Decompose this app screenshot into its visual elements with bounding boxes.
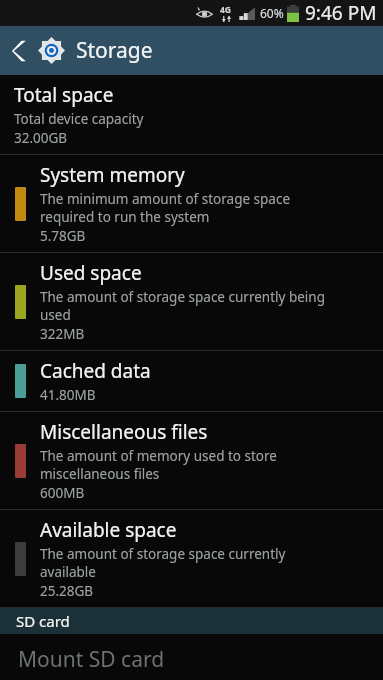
button[interactable]: Total space [0, 75, 383, 154]
staticText: 25.28GB [40, 582, 94, 600]
staticText: 4G [220, 4, 232, 16]
staticText: Mount SD card [18, 645, 165, 669]
staticText: 9:46 PM [305, 0, 377, 26]
staticText: 32.00GB [14, 129, 68, 147]
staticText: Available space [40, 517, 177, 543]
button[interactable]: Mount SD card [0, 634, 383, 680]
staticText: Cached data [40, 358, 151, 384]
button[interactable]: System memory [0, 155, 383, 252]
staticText: Miscellaneous files [40, 419, 208, 445]
staticText: 5.78GB [40, 227, 86, 245]
staticText: Used space [40, 260, 142, 286]
button[interactable]: Miscellaneous files [0, 412, 383, 509]
staticText: The minimum amount of storage space requ… [40, 190, 291, 226]
staticText: Total device capacity [14, 110, 144, 128]
staticText: SD card [16, 611, 70, 631]
button[interactable]: Available space [0, 510, 383, 607]
staticText: Total space [14, 82, 114, 108]
staticText: The amount of memory used to store misce… [40, 447, 277, 483]
staticText: The amount of storage space currently be… [40, 288, 325, 324]
staticText: 322MB [40, 325, 85, 343]
button[interactable]: Used space [0, 253, 383, 350]
staticText: 41.80MB [40, 386, 96, 404]
staticText: System memory [40, 162, 185, 188]
staticText: 60% [260, 5, 284, 21]
button[interactable]: Back [0, 26, 38, 75]
staticText: Storage [76, 36, 153, 65]
staticText: 600MB [40, 484, 85, 502]
button[interactable]: Cached data [0, 351, 383, 411]
staticText: The amount of storage space currently av… [40, 545, 286, 581]
